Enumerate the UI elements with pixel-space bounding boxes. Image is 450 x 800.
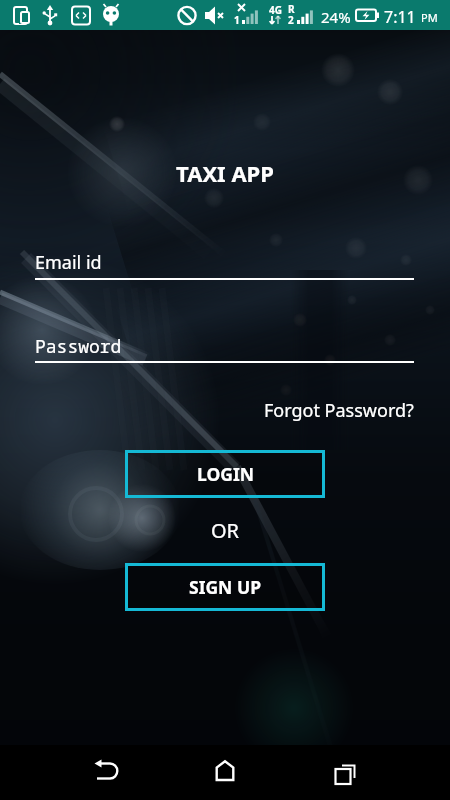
staticText: 2	[288, 13, 294, 27]
staticText: PM	[421, 10, 438, 25]
staticText: Email id	[35, 250, 102, 275]
staticText: SIGN UP	[189, 575, 261, 599]
staticText: OR	[211, 517, 240, 544]
staticText: 1	[234, 13, 240, 27]
staticText: 7:11	[384, 6, 416, 28]
staticText: LOGIN	[197, 462, 254, 486]
staticText: 24%	[321, 7, 351, 27]
staticText: TAXI APP	[176, 158, 274, 188]
staticText: Password	[35, 334, 122, 359]
staticText: Forgot Password?	[264, 398, 414, 423]
staticText: R	[288, 2, 295, 16]
staticText: 4G	[269, 3, 282, 17]
